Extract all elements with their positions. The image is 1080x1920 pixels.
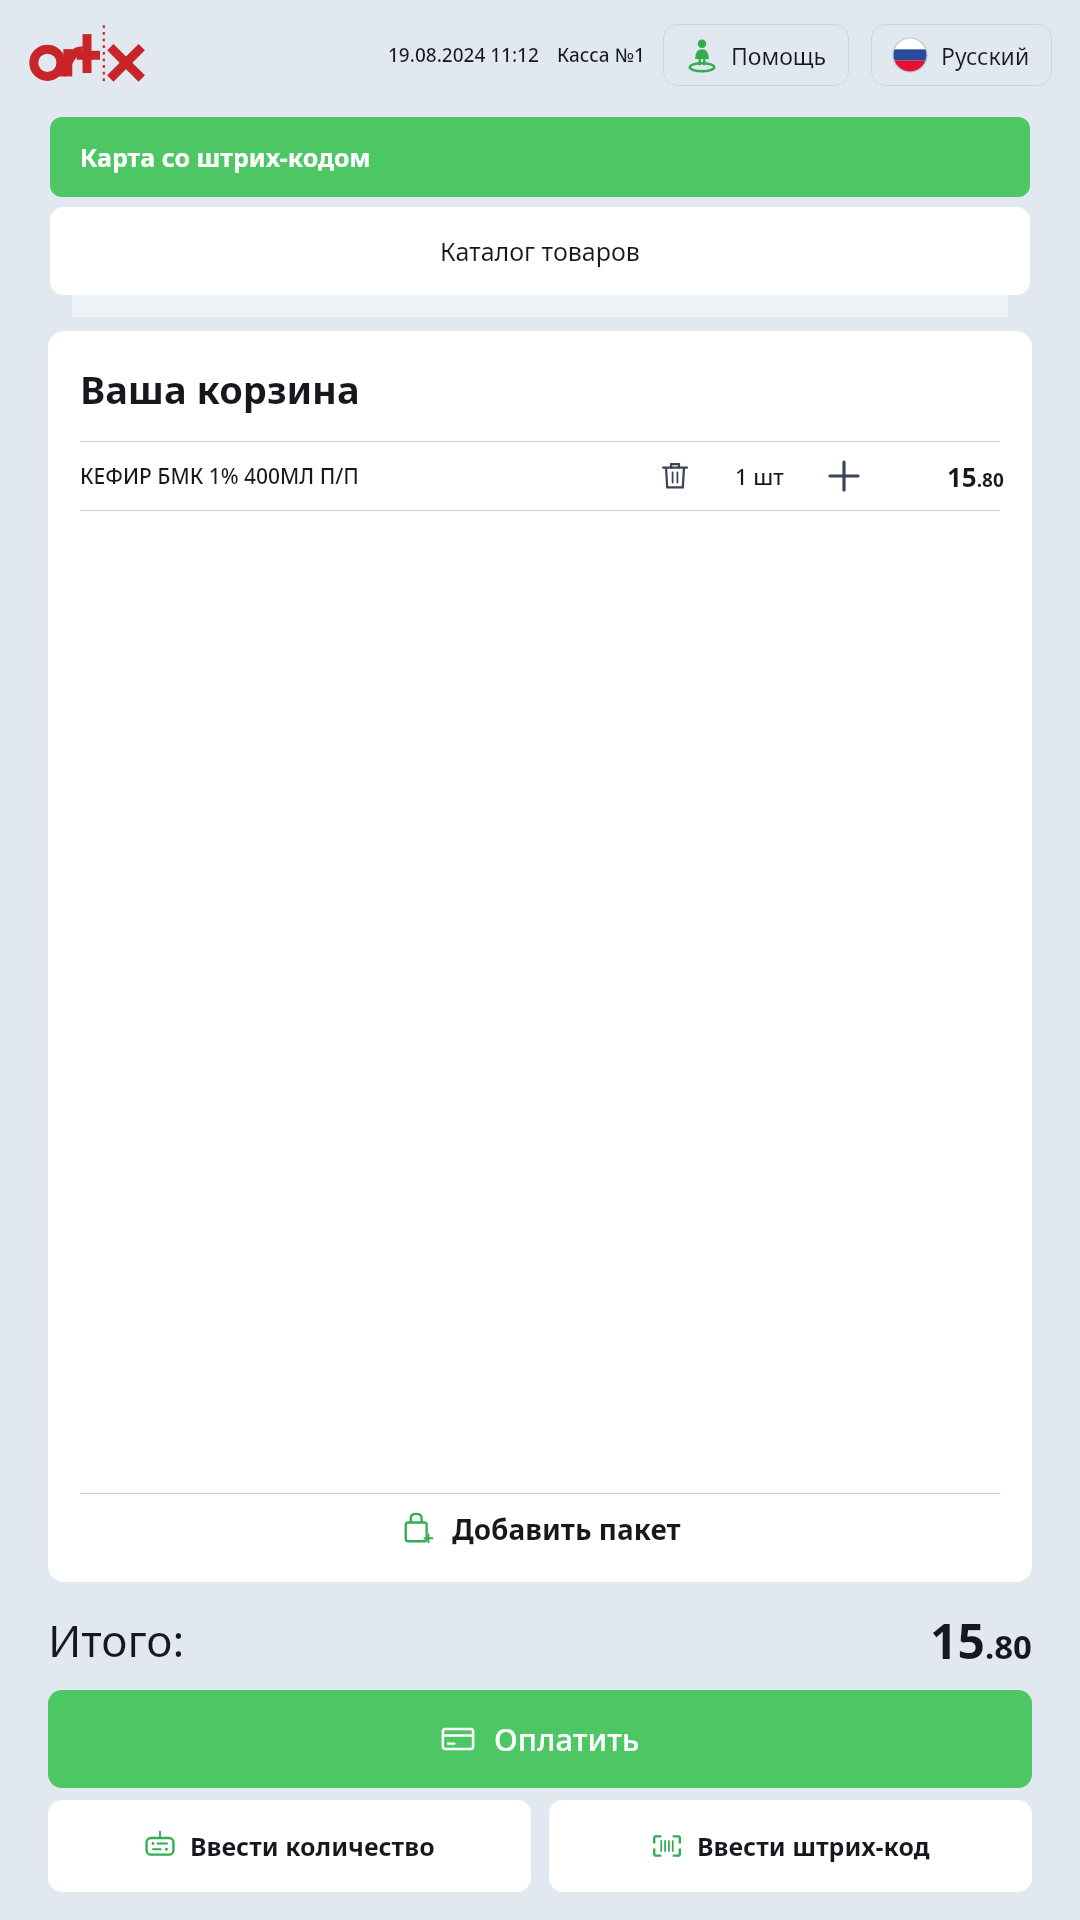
button[interactable]: Оплатить bbox=[48, 1690, 1032, 1788]
staticText: 19.08.2024 11:12 bbox=[388, 42, 539, 68]
button[interactable]: Ввести штрих-код bbox=[549, 1800, 1032, 1892]
staticText: Ваша корзина bbox=[80, 363, 360, 415]
staticText: Карта со штрих-кодом bbox=[80, 140, 371, 174]
button[interactable]: Русский bbox=[871, 24, 1052, 86]
button[interactable]: КЕФИР БМК 1% 400МЛ П/П bbox=[48, 442, 1032, 510]
staticText: Ввести штрих-код bbox=[697, 1829, 930, 1863]
staticText: 15.80 bbox=[930, 1608, 1032, 1673]
staticText: Добавить пакет bbox=[452, 1510, 681, 1548]
button[interactable]: Добавить ещё bbox=[818, 450, 870, 502]
staticText: Касса №1 bbox=[557, 42, 645, 68]
button[interactable]: Каталог товаров bbox=[50, 207, 1030, 295]
staticText: Оплатить bbox=[494, 1718, 640, 1760]
button[interactable]: Карта со штрих-кодом bbox=[50, 117, 1030, 197]
staticText: Ввести количество bbox=[190, 1829, 435, 1863]
button[interactable]: Ввести количество bbox=[48, 1800, 531, 1892]
button[interactable]: Добавить пакет bbox=[374, 1494, 707, 1564]
button[interactable]: Помощь bbox=[663, 24, 849, 86]
staticText: Русский bbox=[941, 40, 1030, 71]
staticText: Каталог товаров bbox=[440, 234, 640, 268]
button[interactable]: Удалить товар bbox=[649, 450, 701, 502]
staticText: 15.80 bbox=[947, 459, 1004, 494]
staticText: Помощь bbox=[731, 40, 827, 71]
staticText: 1 шт bbox=[735, 461, 784, 491]
staticText: КЕФИР БМК 1% 400МЛ П/П bbox=[80, 462, 649, 491]
staticText: Итого: bbox=[48, 1610, 185, 1670]
